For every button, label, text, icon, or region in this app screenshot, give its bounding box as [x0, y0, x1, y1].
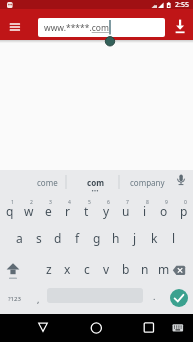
button[interactable]: [168, 170, 193, 194]
staticText: 6: [107, 199, 110, 206]
button[interactable]: h: [106, 224, 125, 254]
button[interactable]: [0, 254, 29, 284]
staticText: u: [122, 203, 130, 219]
button[interactable]: [167, 314, 193, 342]
button[interactable]: f: [68, 224, 87, 254]
staticText: ?123: [8, 295, 21, 303]
staticText: o: [160, 203, 168, 219]
staticText: m: [158, 261, 170, 277]
staticText: j: [133, 230, 137, 246]
button[interactable]: m: [154, 254, 173, 284]
staticText: l: [172, 230, 176, 246]
staticText: p: [180, 203, 188, 219]
staticText: 3: [49, 199, 52, 206]
staticText: 1: [11, 199, 14, 206]
staticText: r: [65, 203, 70, 219]
staticText: 2: [30, 199, 33, 206]
button[interactable]: [170, 16, 192, 38]
button[interactable]: www.*****.com: [38, 18, 165, 37]
staticText: .: [153, 290, 156, 302]
button[interactable]: s: [29, 224, 48, 254]
button[interactable]: ?123: [0, 284, 29, 314]
button[interactable]: k: [145, 224, 164, 254]
button[interactable]: j: [125, 224, 144, 254]
button[interactable]: y: [97, 194, 116, 224]
button[interactable]: ,: [29, 284, 48, 314]
staticText: b: [122, 261, 130, 277]
button[interactable]: r: [58, 194, 77, 224]
staticText: 5: [88, 199, 91, 206]
staticText: s: [36, 230, 42, 246]
staticText: n: [141, 261, 149, 277]
staticText: company: [130, 177, 165, 188]
button[interactable]: [81, 314, 111, 342]
button[interactable]: c: [77, 254, 96, 284]
button[interactable]: i: [135, 194, 154, 224]
button[interactable]: [170, 289, 188, 307]
staticText: c: [84, 261, 90, 277]
button[interactable]: n: [135, 254, 154, 284]
staticText: com: [87, 177, 104, 188]
staticText: e: [45, 203, 52, 219]
staticText: 8: [146, 199, 149, 206]
button[interactable]: com: [69, 170, 122, 194]
staticText: q: [6, 203, 14, 219]
staticText: z: [46, 261, 52, 277]
button[interactable]: g: [87, 224, 106, 254]
button[interactable]: a: [10, 224, 29, 254]
button[interactable]: [28, 314, 58, 342]
staticText: x: [64, 261, 71, 277]
button[interactable]: l: [164, 224, 183, 254]
staticText: 7: [126, 199, 129, 206]
staticText: 9: [165, 199, 168, 206]
staticText: d: [54, 230, 62, 246]
button[interactable]: u: [116, 194, 135, 224]
staticText: a: [16, 230, 23, 246]
staticText: www.*****.com: [44, 22, 109, 34]
staticText: come: [37, 177, 58, 188]
staticText: ,: [37, 293, 40, 305]
button[interactable]: b: [116, 254, 135, 284]
button[interactable]: v: [97, 254, 116, 284]
button[interactable]: company: [121, 170, 174, 194]
button[interactable]: e: [39, 194, 58, 224]
staticText: k: [151, 230, 158, 246]
button[interactable]: w: [19, 194, 38, 224]
staticText: 2:55: [175, 0, 189, 9]
staticText: 4: [68, 199, 71, 206]
button[interactable]: o: [154, 194, 173, 224]
staticText: y: [103, 203, 110, 219]
button[interactable]: [164, 254, 193, 284]
staticText: 0: [184, 199, 187, 206]
button[interactable]: x: [58, 254, 77, 284]
button[interactable]: [133, 314, 163, 342]
button[interactable]: z: [39, 254, 58, 284]
staticText: g: [93, 230, 101, 246]
staticText: i: [143, 203, 147, 219]
staticText: w: [24, 203, 34, 219]
staticText: t: [84, 203, 89, 219]
staticText: h: [112, 230, 120, 246]
button[interactable]: q: [0, 194, 19, 224]
button[interactable]: .: [145, 284, 164, 314]
staticText: v: [103, 261, 110, 277]
button[interactable]: [4, 16, 26, 38]
button[interactable]: t: [77, 194, 96, 224]
button[interactable]: come: [0, 170, 66, 194]
button[interactable]: d: [48, 224, 67, 254]
staticText: f: [75, 230, 80, 246]
button[interactable]: p: [174, 194, 193, 224]
